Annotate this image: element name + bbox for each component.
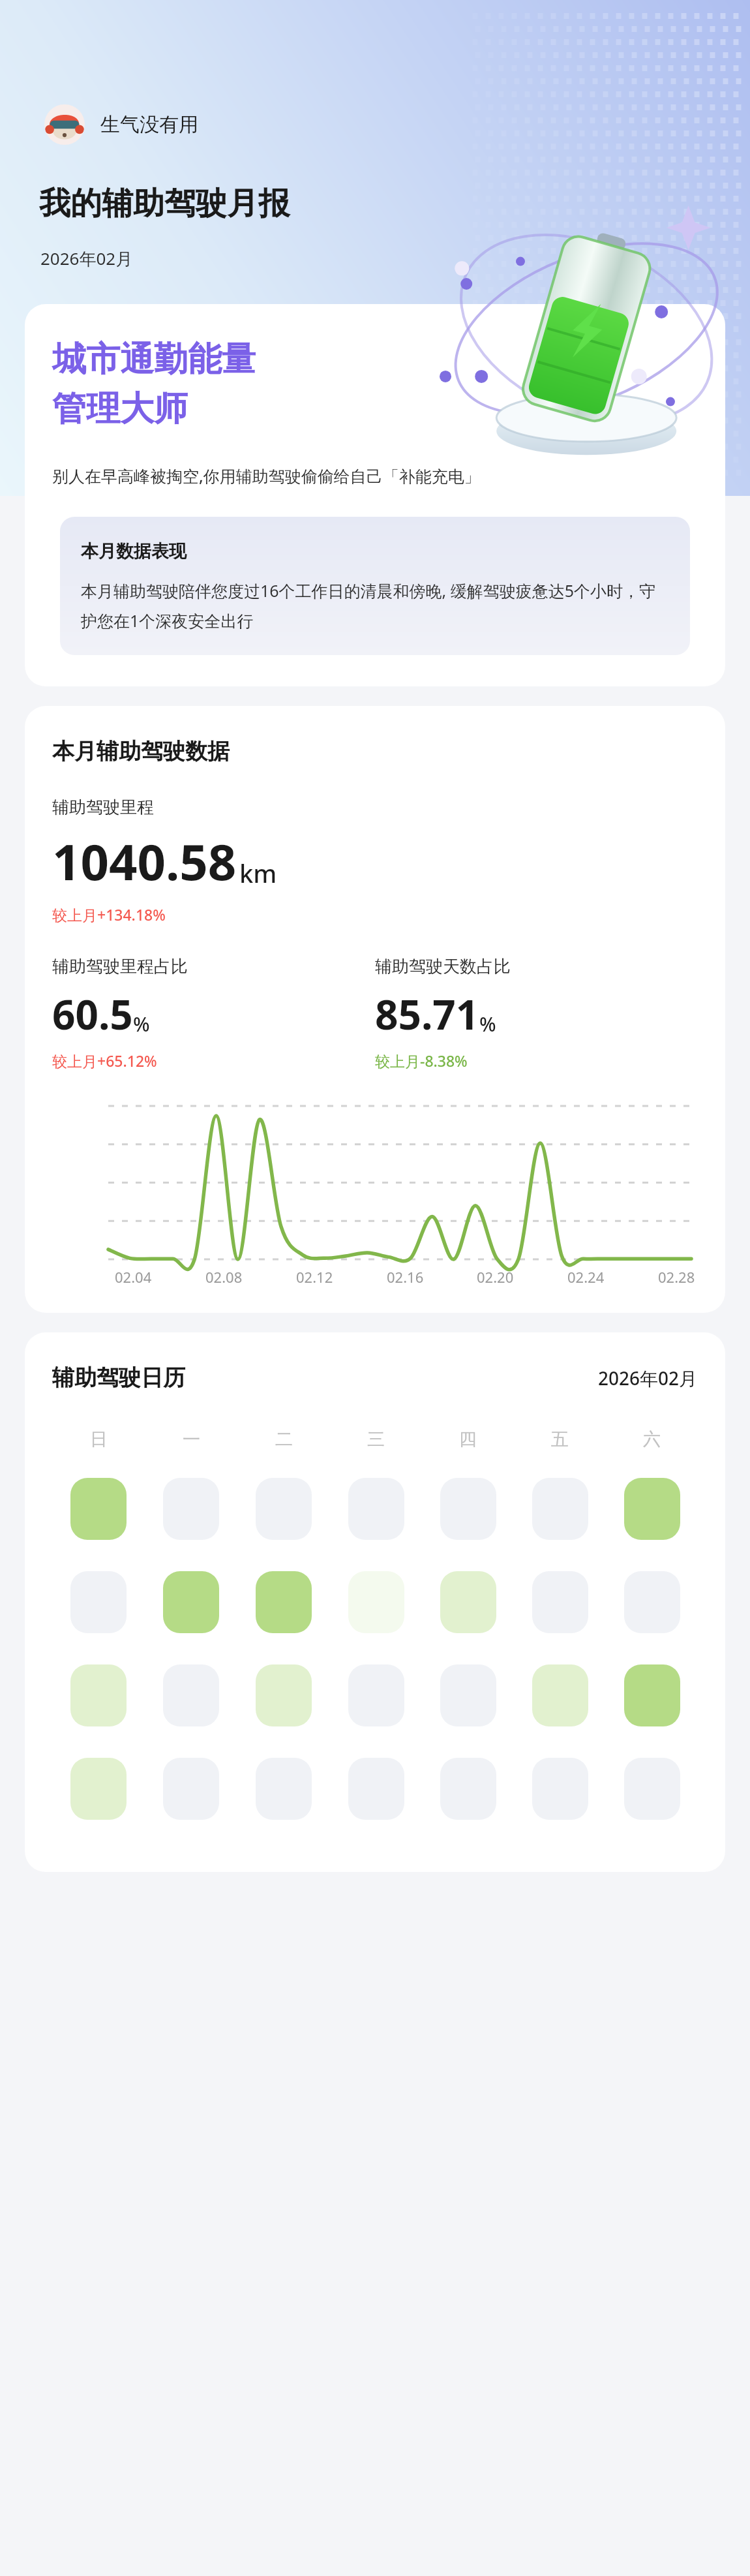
staticText: 辅助驾驶日历 bbox=[52, 1364, 185, 1392]
staticText: 02.20 bbox=[477, 1267, 514, 1287]
staticText: 二 bbox=[275, 1428, 293, 1450]
button[interactable] bbox=[70, 1478, 127, 1540]
staticText: 本月辅助驾驶陪伴您度过16个工作日的清晨和傍晚, 缓解驾驶疲惫达5个小时，守护您… bbox=[81, 579, 669, 632]
button[interactable] bbox=[163, 1571, 219, 1633]
button[interactable] bbox=[348, 1664, 404, 1726]
button[interactable] bbox=[624, 1478, 680, 1540]
button[interactable] bbox=[348, 1758, 404, 1820]
staticText: 三 bbox=[367, 1428, 385, 1450]
staticText: 五 bbox=[551, 1428, 569, 1450]
staticText: 2026年02月 bbox=[598, 1366, 698, 1390]
button[interactable] bbox=[532, 1758, 588, 1820]
other: User avatar bbox=[44, 104, 85, 145]
staticText: 辅助驾驶里程占比 bbox=[52, 956, 188, 977]
button[interactable]: User avatar bbox=[44, 104, 198, 145]
staticText: 四 bbox=[459, 1428, 477, 1450]
staticText: 辅助驾驶里程 bbox=[52, 797, 154, 818]
button[interactable] bbox=[532, 1664, 588, 1726]
button[interactable] bbox=[256, 1758, 312, 1820]
staticText: 02.08 bbox=[205, 1267, 243, 1287]
button[interactable] bbox=[348, 1478, 404, 1540]
staticText: 较上月+134.18% bbox=[52, 904, 166, 925]
staticText: 较上月-8.38% bbox=[375, 1050, 468, 1071]
staticText: 本月辅助驾驶数据 bbox=[52, 737, 230, 765]
button[interactable] bbox=[70, 1571, 127, 1633]
staticText: km bbox=[239, 856, 277, 890]
staticText: 六 bbox=[643, 1428, 661, 1450]
staticText: % bbox=[133, 1011, 150, 1037]
staticText: 城市通勤能量 bbox=[52, 338, 256, 381]
staticText: 60.5 bbox=[52, 987, 133, 1041]
button[interactable] bbox=[440, 1664, 496, 1726]
button[interactable] bbox=[440, 1571, 496, 1633]
button[interactable] bbox=[624, 1758, 680, 1820]
staticText: % bbox=[479, 1011, 496, 1037]
button[interactable] bbox=[624, 1664, 680, 1726]
staticText: 辅助驾驶天数占比 bbox=[375, 956, 511, 977]
staticText: 本月数据表现 bbox=[81, 540, 187, 562]
staticText: 日 bbox=[90, 1428, 108, 1450]
staticText: 02.16 bbox=[387, 1267, 424, 1287]
button[interactable] bbox=[256, 1478, 312, 1540]
button[interactable] bbox=[440, 1478, 496, 1540]
button[interactable] bbox=[163, 1758, 219, 1820]
button[interactable] bbox=[256, 1664, 312, 1726]
staticText: 02.12 bbox=[296, 1267, 333, 1287]
button[interactable] bbox=[348, 1571, 404, 1633]
staticText: 1040.58 bbox=[52, 827, 237, 895]
button[interactable] bbox=[163, 1478, 219, 1540]
staticText: 85.71 bbox=[375, 987, 479, 1041]
staticText: 02.04 bbox=[115, 1267, 152, 1287]
button[interactable] bbox=[440, 1758, 496, 1820]
staticText: 一 bbox=[183, 1428, 200, 1450]
button[interactable] bbox=[163, 1664, 219, 1726]
staticText: 别人在早高峰被掏空,你用辅助驾驶偷偷给自己「补能充电」 bbox=[52, 465, 481, 487]
button[interactable] bbox=[70, 1664, 127, 1726]
staticText: 较上月+65.12% bbox=[52, 1050, 157, 1071]
staticText: 生气没有用 bbox=[100, 112, 198, 137]
staticText: 2026年02月 bbox=[40, 247, 133, 270]
staticText: 02.28 bbox=[658, 1267, 695, 1287]
staticText: 我的辅助驾驶月报 bbox=[39, 184, 290, 223]
button[interactable] bbox=[532, 1571, 588, 1633]
button[interactable] bbox=[624, 1571, 680, 1633]
button[interactable] bbox=[532, 1478, 588, 1540]
staticText: 管理大师 bbox=[52, 388, 188, 431]
button[interactable] bbox=[70, 1758, 127, 1820]
button[interactable] bbox=[256, 1571, 312, 1633]
staticText: 02.24 bbox=[567, 1267, 605, 1287]
